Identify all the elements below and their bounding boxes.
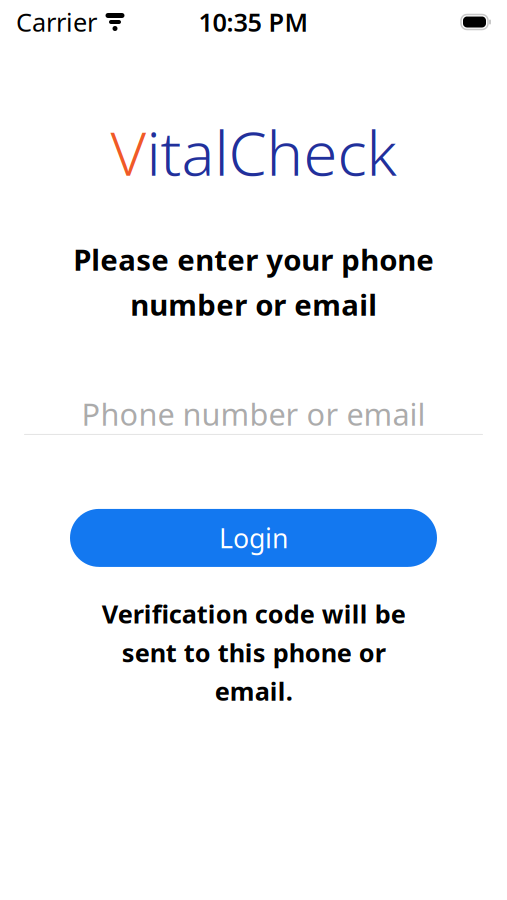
staticText: Phone number or email [81,393,425,434]
staticText: Verification code will be sent to this p… [101,597,405,708]
staticText: Please enter your phone number or email [73,240,434,324]
button[interactable]: Login [70,509,437,567]
staticText: Carrier [16,5,97,39]
staticText: Login [219,520,288,556]
staticText: 10:35 PM [198,5,308,39]
staticText: italCheck [146,111,396,193]
staticText: V [110,111,146,193]
